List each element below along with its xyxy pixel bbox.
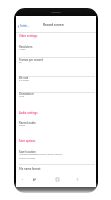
staticText: File name format <box>19 167 41 171</box>
button[interactable]: Orientation <box>16 91 96 104</box>
staticText: 30 <box>19 61 22 64</box>
staticText: screen recorder <box>19 157 36 160</box>
button[interactable]: Save location <box>16 149 96 163</box>
staticText: 5.0 Mbps <box>19 79 29 82</box>
button[interactable]: File name format <box>16 166 96 178</box>
button[interactable]: Settin... <box>16 23 31 29</box>
staticText: Record audio <box>19 121 36 125</box>
button[interactable]: Resolution <box>16 44 96 57</box>
staticText: Audio settings <box>19 111 38 115</box>
staticText: 1080P <box>19 48 26 51</box>
staticText: Bit rate <box>19 76 29 80</box>
staticText: Save options <box>19 139 36 143</box>
staticText: Auto <box>19 95 25 98</box>
button[interactable]: Hide keyboard <box>20 177 24 181</box>
staticText: /storage/emulated/0/SDC Control Center/ <box>19 153 63 156</box>
button[interactable]: Back <box>75 177 79 181</box>
staticText: Orientation <box>19 92 34 96</box>
button[interactable]: Bit rate <box>16 75 96 88</box>
staticText: Video settings <box>19 34 38 38</box>
button[interactable]: Home <box>55 177 59 181</box>
staticText: Settin... <box>20 24 30 28</box>
button[interactable]: Record audio <box>16 120 96 133</box>
button[interactable]: Frames per second <box>16 57 96 70</box>
staticText: Save location <box>19 150 36 154</box>
staticText: Record screen <box>43 23 64 27</box>
staticText: Frames per second <box>19 58 43 62</box>
button[interactable]: Recent apps <box>32 177 36 181</box>
staticText: Resolution <box>19 45 33 49</box>
staticText: None <box>19 124 25 127</box>
